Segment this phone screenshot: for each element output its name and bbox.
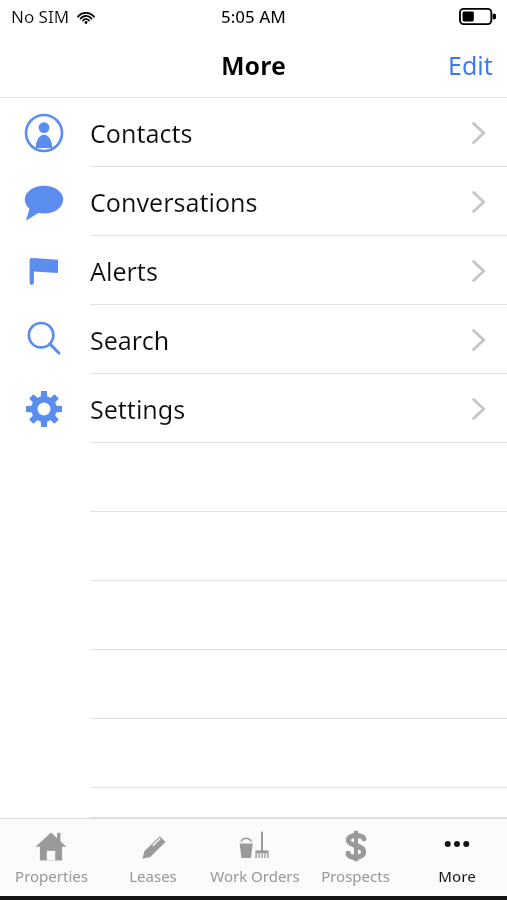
staticText: Edit	[448, 48, 493, 82]
other: Open Conversations	[472, 191, 485, 213]
button[interactable]: Conversations	[0, 167, 507, 236]
button[interactable]: Edit	[434, 38, 507, 92]
staticText: 5:05 AM	[221, 5, 286, 28]
button[interactable]: Work Orders	[204, 819, 305, 896]
staticText: No SIM	[11, 5, 70, 28]
button[interactable]: Search	[0, 305, 507, 374]
button[interactable]: Settings	[0, 374, 507, 443]
button[interactable]: Prospects	[305, 819, 406, 896]
staticText: Prospects	[321, 866, 390, 886]
other: Open Search	[472, 329, 485, 351]
staticText: Conversations	[90, 185, 258, 219]
other: Open Settings	[472, 398, 485, 420]
button[interactable]: Contacts	[0, 98, 507, 167]
staticText: Contacts	[90, 116, 193, 150]
staticText: More	[221, 48, 286, 82]
staticText: Search	[90, 323, 170, 357]
button[interactable]: More	[406, 819, 507, 896]
staticText: Settings	[90, 392, 186, 426]
button[interactable]: Alerts	[0, 236, 507, 305]
button[interactable]: Leases	[102, 819, 204, 896]
staticText: Properties	[15, 866, 88, 886]
button[interactable]: Properties	[0, 819, 102, 896]
staticText: Alerts	[90, 254, 158, 288]
other: Open Contacts	[472, 122, 485, 144]
staticText: More	[438, 866, 476, 886]
staticText: Work Orders	[210, 866, 300, 886]
staticText: Leases	[129, 866, 177, 886]
other: Open Alerts	[472, 260, 485, 282]
